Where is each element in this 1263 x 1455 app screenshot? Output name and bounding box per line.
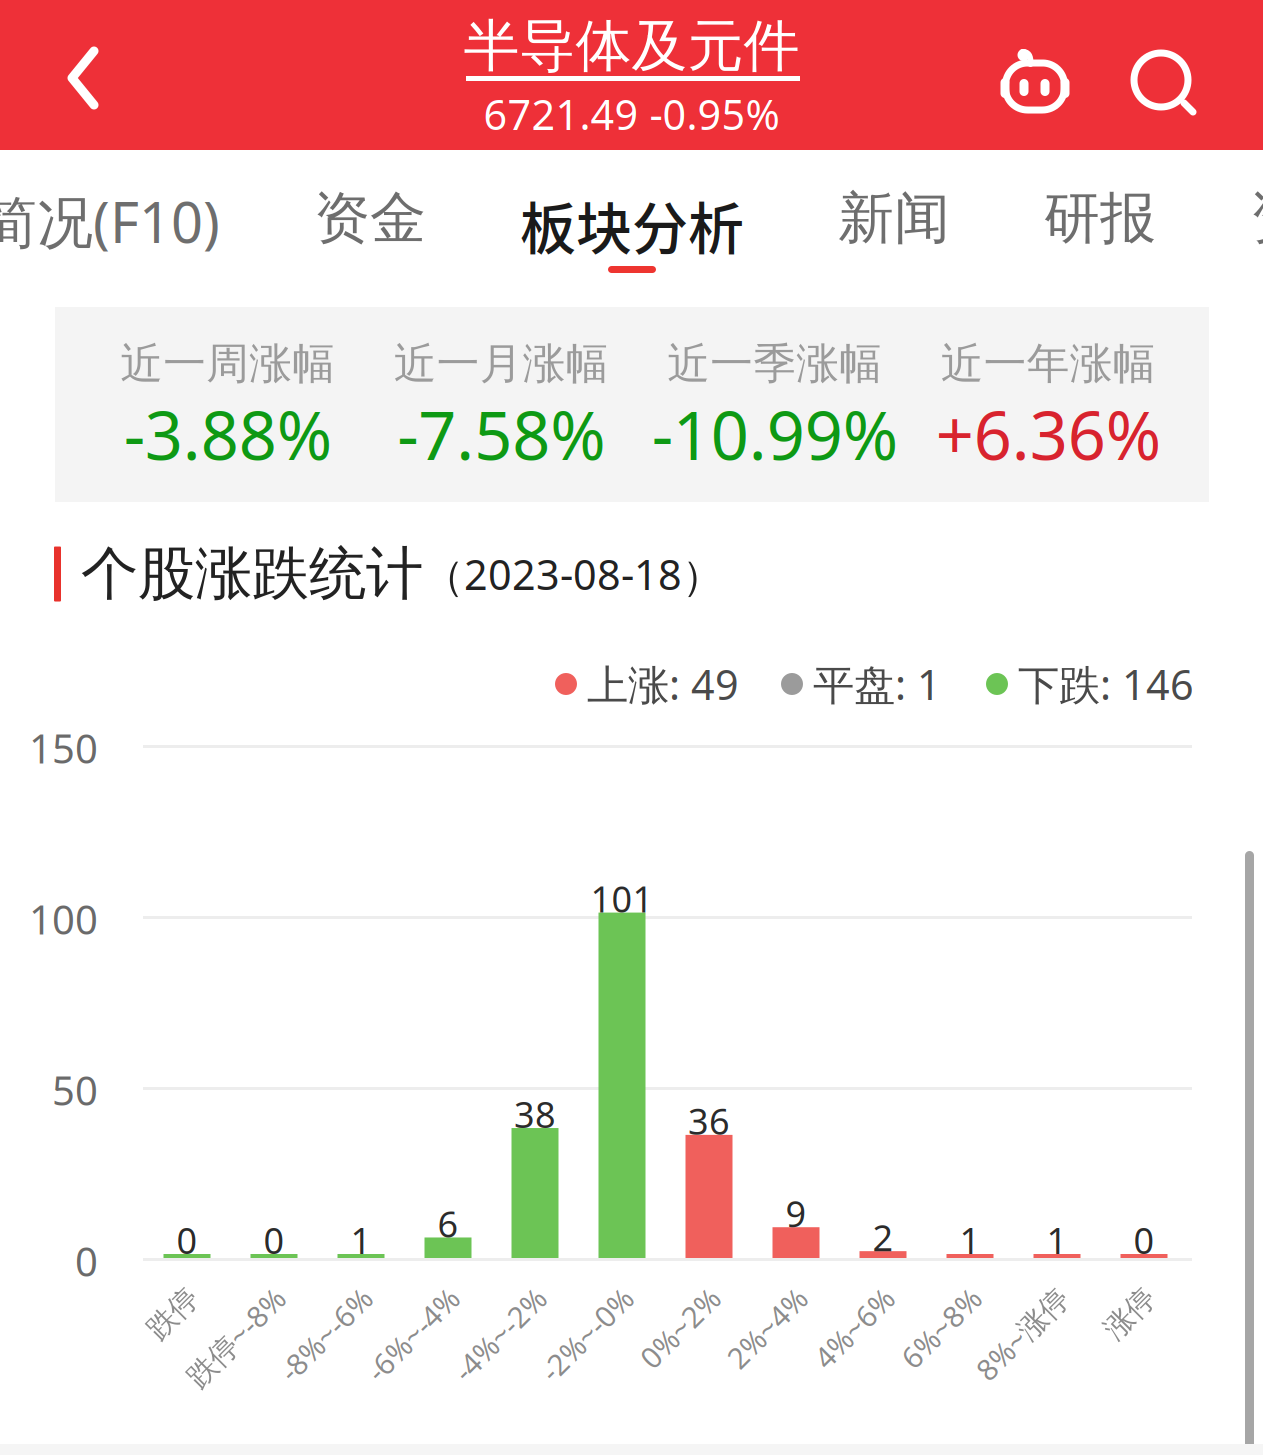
staticText: 8%~涨停	[947, 1273, 1063, 1312]
staticText: -4%~-2%	[424, 1273, 541, 1312]
staticText: 6	[437, 1200, 458, 1247]
staticText: 150	[29, 721, 98, 774]
staticText: 资金	[314, 184, 426, 253]
staticText: 板块分析	[520, 184, 744, 265]
staticText: 简况(F10)	[0, 184, 220, 258]
button[interactable]: 板块分析	[520, 150, 744, 307]
button[interactable]: 新闻	[838, 150, 950, 307]
button[interactable]: 简况(F10)	[0, 150, 220, 307]
staticText: 近一年涨幅	[941, 337, 1156, 390]
staticText: 跌停	[135, 1275, 193, 1311]
staticText: 跌停~-8%	[155, 1273, 280, 1312]
staticText: 0%~2%	[616, 1273, 715, 1312]
button[interactable]: Back	[18, 3, 148, 153]
staticText: 0	[1133, 1216, 1154, 1264]
staticText: 平盘: 1	[813, 657, 941, 711]
staticText: 研报	[1044, 184, 1156, 253]
staticText: （2023-08-18）	[423, 546, 723, 601]
staticText: -2%~-0%	[511, 1273, 628, 1312]
staticText: 101	[590, 875, 653, 922]
button[interactable]: Search	[1110, 9, 1220, 159]
staticText: 0	[263, 1216, 284, 1264]
staticText: 1	[959, 1216, 980, 1264]
staticText: 0	[75, 1234, 98, 1287]
staticText: 资讯	[1250, 184, 1263, 253]
staticText: -10.99%	[652, 390, 898, 478]
staticText: +6.36%	[936, 390, 1161, 478]
staticText: 6%~8%	[877, 1273, 976, 1312]
staticText: 2	[872, 1213, 893, 1261]
staticText: 新闻	[838, 184, 950, 253]
staticText: 9	[785, 1189, 806, 1237]
staticText: 近一月涨幅	[394, 337, 609, 390]
staticText: 近一季涨幅	[667, 337, 882, 390]
staticText: 个股涨跌统计	[81, 539, 423, 609]
staticText: 36	[688, 1097, 730, 1145]
staticText: 50	[52, 1063, 98, 1116]
staticText: 2%~4%	[703, 1273, 802, 1312]
staticText: 半导体及元件	[463, 12, 799, 80]
staticText: 涨停	[1092, 1275, 1150, 1311]
staticText: 100	[29, 892, 98, 945]
staticText: 下跌: 146	[1018, 657, 1194, 711]
staticText: 1	[1046, 1216, 1067, 1264]
staticText: -6%~-4%	[337, 1273, 454, 1312]
staticText: 近一周涨幅	[120, 337, 335, 390]
staticText: 38	[514, 1090, 556, 1138]
staticText: 4%~6%	[790, 1273, 889, 1312]
staticText: 6721.49 -0.95%	[483, 87, 779, 141]
button[interactable]: 研报	[1044, 150, 1156, 307]
button[interactable]: 资讯	[1250, 150, 1263, 307]
staticText: -8%~-6%	[250, 1273, 367, 1312]
staticText: 上涨: 49	[587, 657, 739, 711]
staticText: 0	[176, 1216, 197, 1264]
button[interactable]: AI assistant	[980, 5, 1090, 155]
staticText: 1	[350, 1216, 371, 1264]
button[interactable]: 资金	[314, 150, 426, 307]
staticText: -3.88%	[124, 390, 332, 478]
staticText: -7.58%	[397, 390, 605, 478]
